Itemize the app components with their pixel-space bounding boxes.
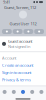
staticText: Guest_Screen_112 <box>4 5 36 10</box>
staticText: Sign in to account <box>2 70 31 75</box>
staticText: Guest account <box>8 39 32 44</box>
staticText: 9:41 <box>3 0 10 5</box>
button[interactable]: Privacy & terms <box>2 77 31 82</box>
button[interactable]: Guest account <box>0 37 46 51</box>
staticText: Create an account <box>2 62 33 68</box>
staticText: Account <box>2 55 16 60</box>
staticText: Not signed in <box>8 44 30 49</box>
button[interactable]: Sign in to account <box>2 70 31 75</box>
button[interactable]: Create an account <box>2 62 33 68</box>
staticText: Guest User 112 <box>9 21 36 26</box>
button[interactable]: Activity <box>28 86 37 97</box>
button[interactable] <box>2 29 12 34</box>
button[interactable] <box>13 29 23 34</box>
button[interactable]: Create <box>18 86 28 97</box>
button[interactable]: Search <box>9 86 18 97</box>
button[interactable]: Profile <box>37 86 46 97</box>
button[interactable] <box>23 29 33 34</box>
staticText: Privacy & terms <box>2 77 31 82</box>
button[interactable]: Home <box>0 86 9 97</box>
button[interactable] <box>34 29 44 34</box>
